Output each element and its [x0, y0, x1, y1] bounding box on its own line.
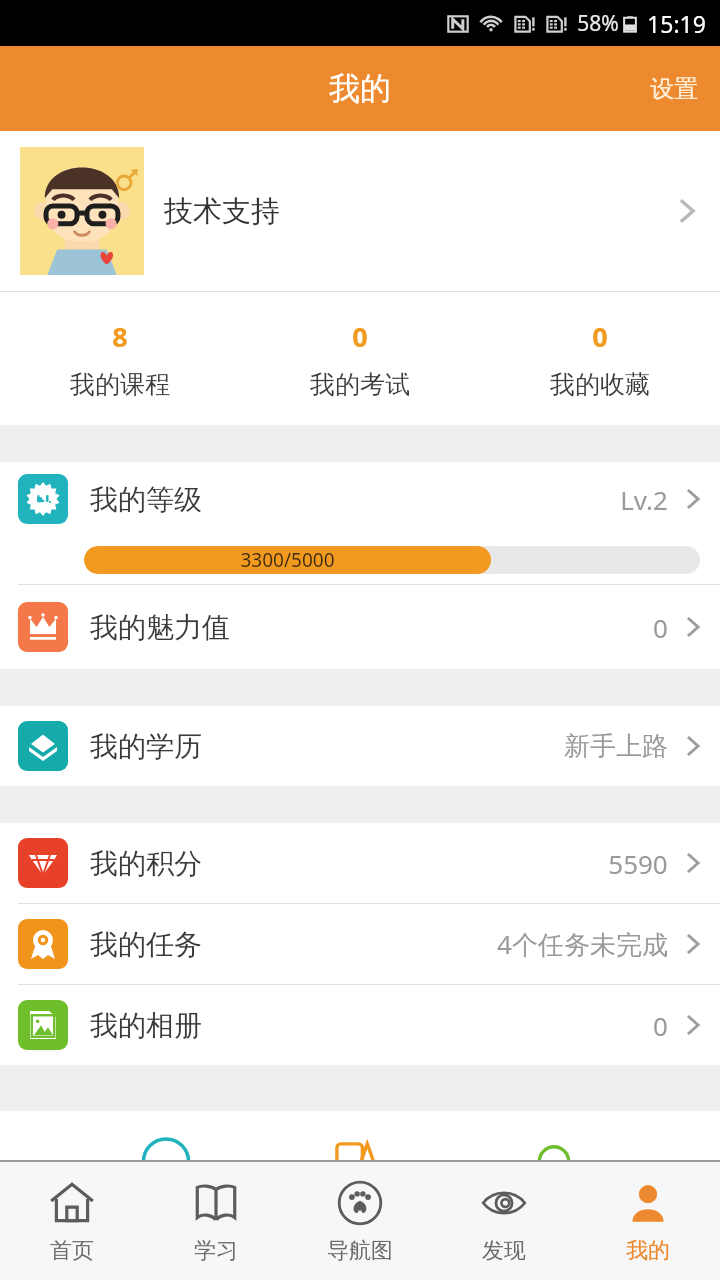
- staticText: 3300/5000: [240, 547, 335, 573]
- button[interactable]: 导航图: [288, 1162, 432, 1280]
- staticText: 15:19: [647, 8, 706, 39]
- button[interactable]: 首页: [0, 1162, 144, 1280]
- staticText: 4个任务未完成: [497, 926, 668, 962]
- staticText: 8: [112, 318, 128, 355]
- button[interactable]: 0: [240, 292, 480, 425]
- button[interactable]: 我的魅力值: [0, 585, 720, 669]
- button[interactable]: 我的积分: [0, 823, 720, 903]
- staticText: 学习: [194, 1237, 238, 1265]
- staticText: 0: [592, 318, 608, 355]
- button[interactable]: 我的等级: [0, 462, 720, 536]
- staticText: Lv.2: [620, 482, 668, 517]
- staticText: 我的考试: [310, 369, 410, 400]
- button[interactable]: 发现: [432, 1162, 576, 1280]
- staticText: 我的课程: [70, 369, 170, 400]
- button[interactable]: 学习: [144, 1162, 288, 1280]
- staticText: 58%: [577, 9, 619, 38]
- staticText: 发现: [482, 1237, 526, 1265]
- button[interactable]: 技术支持: [0, 131, 720, 291]
- staticText: 我的积分: [90, 846, 202, 881]
- button[interactable]: 我的: [576, 1162, 720, 1280]
- staticText: 0: [653, 1008, 668, 1043]
- button[interactable]: 设置: [628, 56, 720, 122]
- staticText: 新手上路: [564, 730, 668, 763]
- staticText: 首页: [50, 1237, 94, 1265]
- staticText: 我的相册: [90, 1008, 202, 1043]
- button[interactable]: 我的学历: [0, 706, 720, 786]
- staticText: 我的任务: [90, 927, 202, 962]
- staticText: 技术支持: [164, 193, 280, 230]
- staticText: 导航图: [327, 1237, 393, 1265]
- button[interactable]: 0: [480, 292, 720, 425]
- staticText: 我的魅力值: [90, 610, 230, 645]
- staticText: 我的: [329, 69, 391, 108]
- staticText: 5590: [608, 846, 668, 881]
- button[interactable]: 我的相册: [0, 985, 720, 1065]
- staticText: 0: [352, 318, 368, 355]
- button[interactable]: 8: [0, 292, 240, 425]
- staticText: 0: [653, 610, 668, 645]
- button[interactable]: 我的任务: [0, 904, 720, 984]
- staticText: 设置: [650, 74, 698, 104]
- staticText: 我的收藏: [550, 369, 650, 400]
- staticText: 我的学历: [90, 729, 202, 764]
- staticText: 我的: [626, 1237, 670, 1265]
- staticText: 我的等级: [90, 482, 202, 517]
